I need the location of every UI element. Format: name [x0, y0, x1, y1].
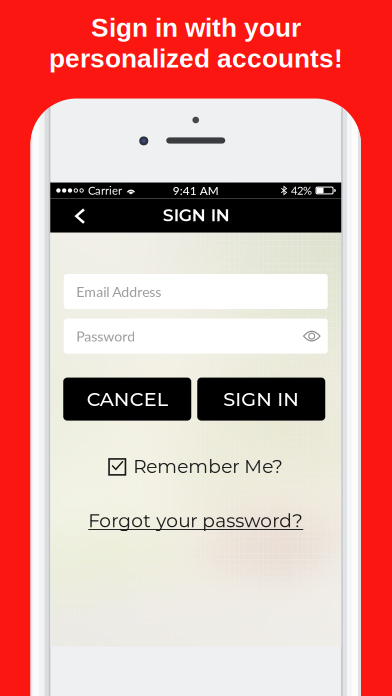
staticText: personalized accounts!	[49, 44, 343, 73]
staticText: Password	[76, 328, 135, 345]
staticText: SIGN IN	[163, 205, 230, 226]
staticText: Email Address	[76, 283, 161, 300]
staticText: CANCEL	[87, 387, 168, 411]
staticText: Forgot your password?	[88, 509, 303, 532]
staticText: SIGN IN	[223, 387, 299, 411]
staticText: 9:41 AM	[173, 183, 219, 198]
button[interactable]: Back	[59, 198, 101, 232]
button[interactable]: CANCEL	[63, 378, 191, 421]
button[interactable]: Forgot your password?	[88, 507, 303, 534]
button[interactable]: SIGN IN	[197, 378, 325, 421]
staticText: Carrier	[88, 184, 122, 197]
staticText: Remember Me?	[133, 455, 283, 478]
button[interactable]: Remember Me?	[108, 454, 283, 480]
staticText: Sign in with your	[91, 13, 301, 42]
staticText: 42%	[291, 184, 312, 197]
